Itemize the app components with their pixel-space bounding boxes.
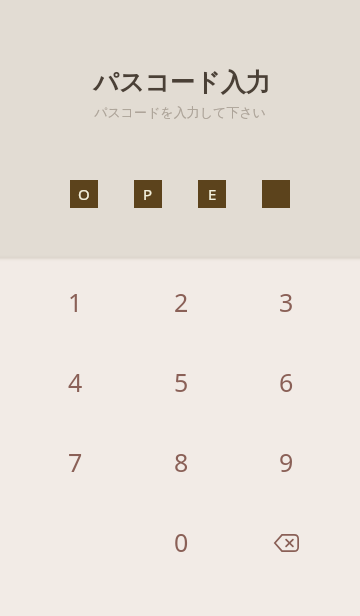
staticText: 5 (174, 365, 189, 399)
staticText: O (78, 184, 90, 204)
button[interactable]: 6 (250, 346, 322, 418)
button[interactable]: Backspace (254, 510, 318, 574)
button[interactable]: 0 (145, 506, 217, 578)
staticText: 1 (68, 285, 83, 319)
staticText: パスコードを入力して下さい (94, 104, 266, 120)
button[interactable]: 1 (39, 266, 111, 338)
staticText: 3 (279, 285, 294, 319)
staticText: 0 (174, 525, 189, 559)
staticText: 7 (68, 445, 83, 479)
button[interactable]: 8 (145, 426, 217, 498)
button[interactable]: 5 (145, 346, 217, 418)
staticText: 4 (68, 365, 83, 399)
button[interactable]: 4 (39, 346, 111, 418)
button[interactable]: E (198, 180, 226, 208)
button[interactable]: 3 (250, 266, 322, 338)
staticText: 6 (279, 365, 294, 399)
button[interactable]: 2 (145, 266, 217, 338)
staticText: 8 (174, 445, 189, 479)
staticText: 2 (174, 285, 189, 319)
staticText: パスコード入力 (93, 67, 271, 98)
button[interactable]: O (70, 180, 98, 208)
staticText: 9 (279, 445, 294, 479)
button[interactable]: P (134, 180, 162, 208)
button[interactable]: 9 (250, 426, 322, 498)
staticText: E (208, 184, 217, 204)
button[interactable]: 7 (39, 426, 111, 498)
staticText: P (143, 184, 153, 204)
